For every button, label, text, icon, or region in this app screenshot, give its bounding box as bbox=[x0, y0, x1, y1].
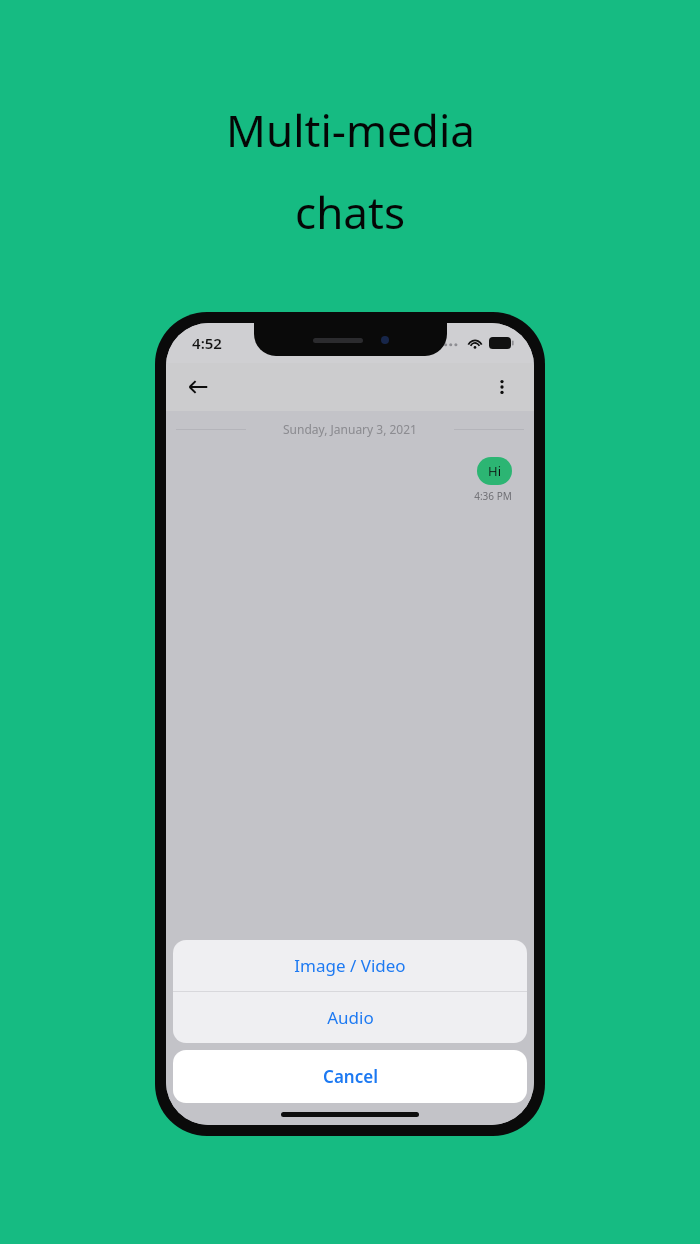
button[interactable]: Hi bbox=[477, 457, 512, 485]
staticText: Image / Video bbox=[294, 954, 406, 977]
staticText: Cancel bbox=[323, 1065, 378, 1088]
staticText: 4:52 bbox=[192, 333, 222, 353]
staticText: Hi bbox=[488, 462, 501, 480]
staticText: Multi-media bbox=[226, 100, 475, 160]
staticText: 4:36 PM bbox=[474, 489, 512, 503]
button[interactable]: More options bbox=[482, 367, 522, 407]
button[interactable]: Cancel bbox=[173, 1050, 527, 1103]
button[interactable]: Back bbox=[178, 367, 218, 407]
button[interactable]: Image / Video bbox=[173, 940, 527, 991]
staticText: chats bbox=[295, 182, 405, 242]
staticText: Audio bbox=[327, 1006, 374, 1029]
button[interactable]: Audio bbox=[173, 992, 527, 1043]
staticText: Sunday, January 3, 2021 bbox=[283, 421, 417, 437]
